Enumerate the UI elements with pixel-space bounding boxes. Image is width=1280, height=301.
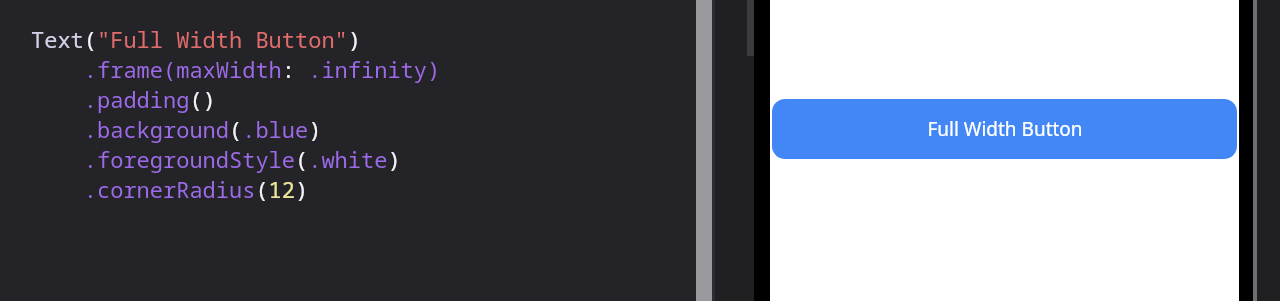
staticText: .cornerRadius(12): [31, 174, 309, 204]
staticText: Full Width Button: [927, 116, 1083, 142]
staticText: .padding(): [31, 84, 216, 114]
staticText: .background(.blue): [31, 114, 322, 144]
button[interactable]: Full Width Button: [772, 99, 1237, 159]
staticText: Text("Full Width Button"): [31, 24, 362, 54]
staticText: .frame(maxWidth: .infinity): [31, 54, 441, 84]
staticText: .foregroundStyle(.white): [31, 144, 401, 174]
